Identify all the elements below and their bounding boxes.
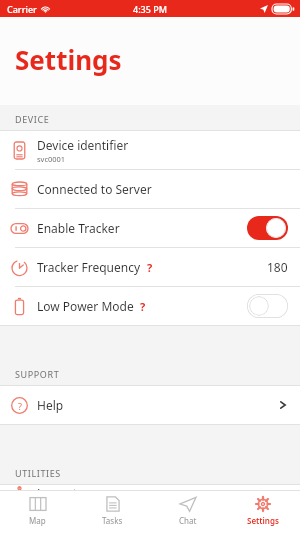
staticText: SUPPORT	[15, 368, 60, 380]
staticText: Help	[37, 397, 64, 413]
button[interactable]: Chat	[150, 491, 225, 533]
staticText: ?	[18, 400, 22, 412]
staticText: Device identifier	[37, 137, 129, 153]
button[interactable]: Settings	[225, 491, 300, 533]
staticText: UTILITIES	[15, 467, 61, 479]
button[interactable]: Connected to Server	[0, 170, 300, 208]
staticText: DEVICE	[15, 113, 50, 125]
staticText: Map	[29, 515, 46, 526]
staticText: Low Power Mode	[37, 298, 134, 314]
staticText: svc0001	[37, 154, 66, 164]
button[interactable]: Enable Tracker	[0, 209, 300, 247]
button[interactable]: Toggle on	[247, 216, 288, 240]
staticText: 180	[267, 259, 288, 275]
button[interactable]: Tasks	[75, 491, 150, 533]
staticText: 4:35 PM	[133, 3, 167, 15]
staticText: ?	[140, 299, 146, 314]
staticText: ?	[147, 260, 153, 275]
staticText: Settings	[247, 515, 279, 526]
button[interactable]: Map	[0, 491, 75, 533]
button[interactable]: Tracker Frequency	[0, 248, 300, 286]
staticText: Connected to Server	[37, 181, 152, 197]
staticText: Tasks	[102, 515, 123, 526]
button[interactable]: Logout	[0, 485, 300, 490]
other: Open Help	[278, 400, 288, 410]
staticText: Chat	[179, 515, 197, 526]
staticText: Enable Tracker	[37, 220, 120, 236]
button[interactable]: ?	[0, 386, 300, 424]
staticText: Logout	[37, 485, 77, 490]
button[interactable]: Low Power Mode	[0, 287, 300, 325]
staticText: Tracker Frequency	[37, 259, 141, 275]
staticText: Settings	[15, 42, 122, 77]
staticText: Carrier	[7, 3, 37, 15]
button[interactable]: Toggle off	[247, 294, 288, 318]
button[interactable]: Device identifier	[0, 131, 300, 169]
